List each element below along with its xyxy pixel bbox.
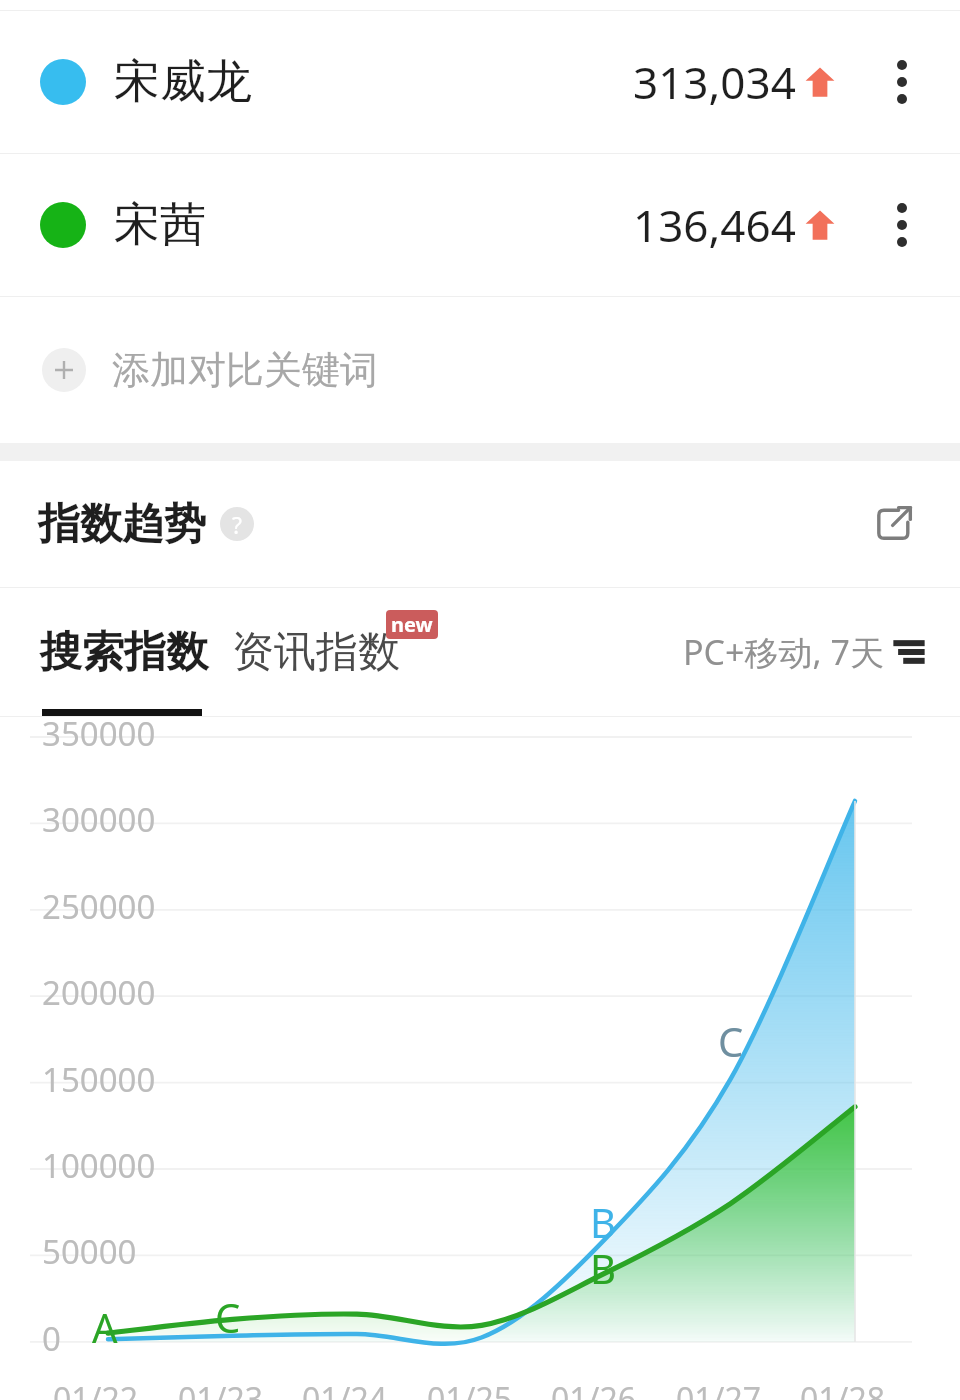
staticText: 01/23 — [178, 1377, 264, 1400]
staticText: 宋威龙 — [114, 53, 252, 111]
staticText: 宋茜 — [114, 196, 206, 254]
staticText: 指数趋势 — [38, 498, 206, 551]
staticText: PC+移动, 7天 — [683, 629, 884, 675]
button[interactable]: More options — [872, 195, 932, 255]
staticText: 50000 — [42, 1229, 137, 1274]
button[interactable]: Help — [220, 507, 254, 541]
staticText: 350000 — [42, 711, 156, 756]
staticText: 150000 — [42, 1057, 156, 1102]
button[interactable]: Open in new window — [864, 494, 924, 554]
staticText: 0 — [42, 1316, 61, 1361]
staticText: C — [215, 1290, 241, 1344]
staticText: 01/28 — [800, 1377, 886, 1400]
staticText: 313,034 — [633, 52, 796, 112]
staticText: 添加对比关键词 — [112, 346, 378, 394]
staticText: B — [590, 1241, 616, 1295]
staticText: 250000 — [42, 884, 156, 929]
staticText: 200000 — [42, 970, 156, 1015]
button[interactable]: More options — [872, 52, 932, 112]
staticText: B — [590, 1195, 616, 1249]
button[interactable]: 添加对比关键词 — [0, 297, 960, 443]
staticText: ? — [232, 509, 242, 540]
staticText: 01/22 — [53, 1377, 139, 1400]
staticText: 01/26 — [551, 1377, 637, 1400]
staticText: 01/25 — [427, 1377, 513, 1400]
button[interactable]: 宋茜 — [0, 154, 960, 296]
staticText: 136,464 — [633, 195, 796, 255]
staticText: 100000 — [42, 1143, 156, 1188]
staticText: 01/27 — [676, 1377, 762, 1400]
button[interactable]: 资讯指数 — [232, 626, 400, 679]
button[interactable]: PC+移动, 7天 — [683, 629, 926, 675]
staticText: new — [391, 611, 433, 638]
staticText: C — [718, 1014, 744, 1068]
staticText: A — [92, 1300, 118, 1354]
staticText: 01/24 — [302, 1377, 388, 1400]
button[interactable]: 搜索指数 — [40, 626, 208, 679]
staticText: 300000 — [42, 797, 156, 842]
button[interactable]: 宋威龙 — [0, 11, 960, 153]
